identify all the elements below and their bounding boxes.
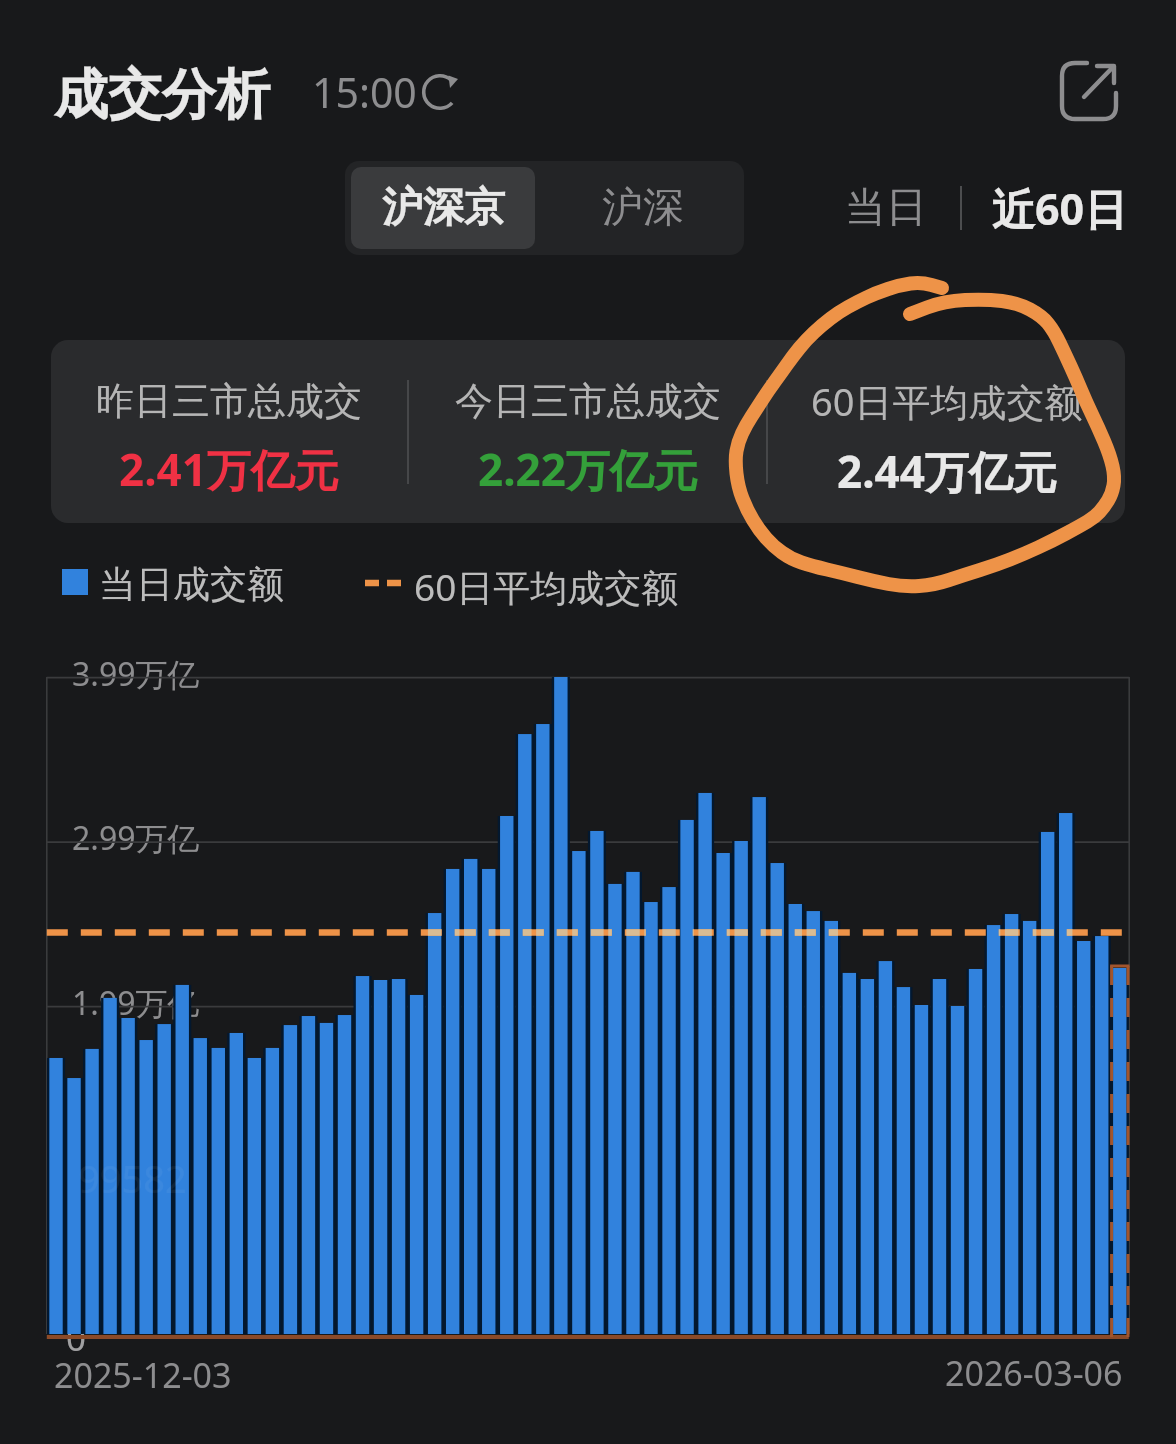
staticText: 3.99万亿 [72, 652, 200, 696]
button[interactable]: 沪深 [541, 161, 744, 255]
staticText: 60日平均成交额 [414, 561, 679, 612]
staticText: 沪深 [602, 182, 684, 234]
staticText: 2.44万亿元 [837, 441, 1057, 501]
staticText: 2026-03-06 [945, 1350, 1123, 1396]
button[interactable]: 当日 [845, 176, 927, 240]
staticText: 60日平均成交额 [811, 375, 1083, 427]
button[interactable]: 成交分析 [54, 59, 270, 131]
staticText: 当日 [845, 182, 927, 234]
staticText: 近60日 [992, 179, 1128, 238]
staticText: 今日三市总成交 [455, 377, 721, 425]
button[interactable]: 近60日 [992, 174, 1128, 242]
staticText: 2025-12-03 [54, 1352, 232, 1398]
staticText: 2.41万亿元 [119, 439, 339, 499]
staticText: 99582 [78, 1152, 187, 1204]
staticText: 1.99万亿 [72, 981, 200, 1025]
button[interactable]: 沪深京 [351, 167, 535, 249]
button[interactable]: 今日三市总成交 [409, 365, 766, 499]
staticText: 0 [66, 1314, 87, 1362]
button[interactable]: 昨日三市总成交 [51, 365, 407, 499]
staticText: 沪深京 [382, 182, 505, 234]
button[interactable]: Refresh [414, 66, 466, 118]
staticText: 15:00 [312, 64, 417, 120]
staticText: 2.99万亿 [72, 816, 200, 860]
staticText: 2.22万亿元 [478, 439, 698, 499]
button[interactable]: Share [1056, 57, 1122, 123]
button[interactable]: 60日平均成交额 [768, 363, 1125, 501]
staticText: 当日成交额 [99, 561, 284, 608]
staticText: 昨日三市总成交 [96, 377, 362, 425]
staticText: 成交分析 [54, 61, 270, 129]
